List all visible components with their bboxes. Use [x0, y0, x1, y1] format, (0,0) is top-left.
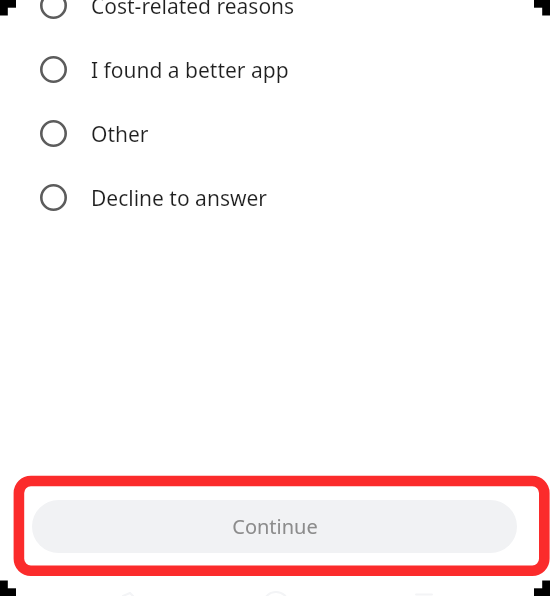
- staticText: Cost-related reasons: [91, 0, 295, 21]
- button[interactable]: Cost-related reasons: [0, 0, 550, 37]
- staticText: Continue: [232, 513, 318, 540]
- button[interactable]: Other: [0, 101, 550, 165]
- button[interactable]: Continue: [32, 500, 517, 553]
- staticText: Other: [91, 120, 149, 149]
- staticText: I found a better app: [91, 56, 289, 85]
- button[interactable]: Decline to answer: [0, 165, 550, 229]
- button[interactable]: I found a better app: [0, 37, 550, 101]
- staticText: Decline to answer: [91, 184, 267, 213]
